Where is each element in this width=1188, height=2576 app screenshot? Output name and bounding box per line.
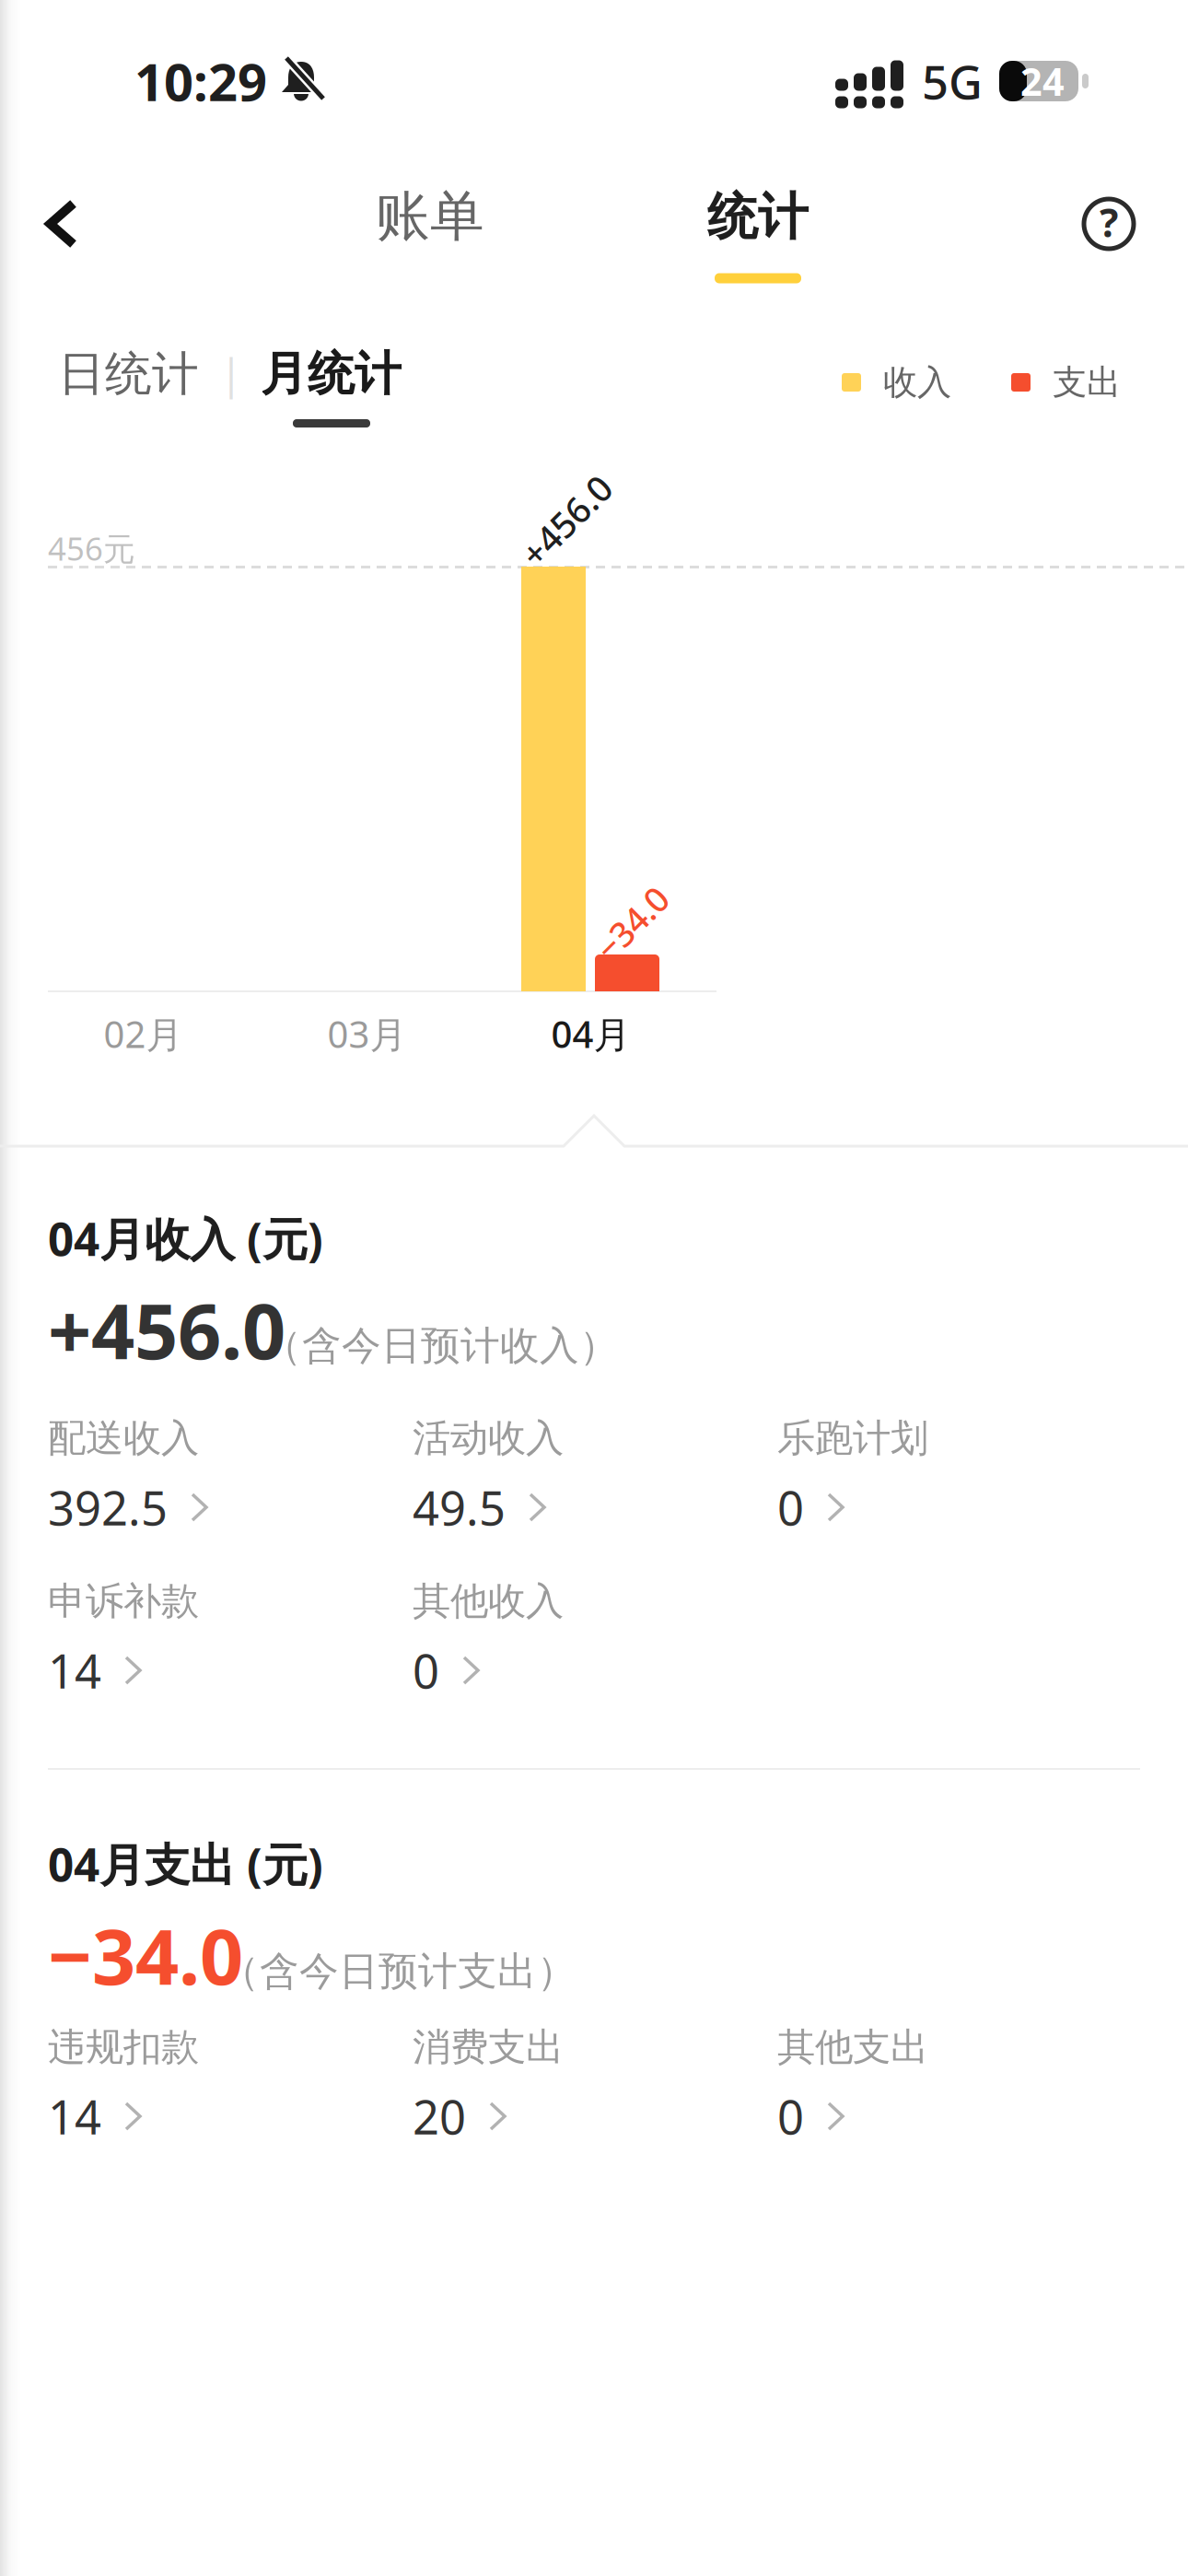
button[interactable]: 统计	[666, 181, 850, 291]
button[interactable]: 日统计	[58, 348, 205, 429]
staticText: 配送收入	[48, 1415, 199, 1462]
staticText: −34.0	[588, 900, 675, 946]
staticText: 14	[48, 1639, 101, 1701]
staticText: 02月	[104, 1009, 183, 1058]
staticText: 0	[777, 2085, 804, 2147]
staticText: 日统计	[58, 345, 199, 403]
staticText: 04月	[551, 1009, 630, 1058]
staticText: 活动收入	[413, 1415, 564, 1462]
staticText: 04月收入 (元)	[48, 1208, 323, 1268]
staticText: +456.0	[48, 1279, 285, 1380]
staticText: 申诉补款	[48, 1578, 199, 1625]
button[interactable]: 乐跑计划	[777, 1417, 1142, 1528]
staticText: 其他支出	[777, 2024, 928, 2071]
staticText: 456元	[48, 527, 135, 569]
staticText: 支出	[1053, 361, 1121, 404]
staticText: 0	[777, 1476, 804, 1538]
button[interactable]: 申诉补款	[48, 1580, 413, 1691]
staticText: （含今日预计收入）	[262, 1322, 619, 1370]
button[interactable]: 消费支出	[413, 2026, 777, 2137]
button[interactable]: 活动收入	[413, 1417, 777, 1528]
staticText: 5G	[922, 50, 983, 112]
staticText: 03月	[327, 1009, 407, 1058]
staticText: 乐跑计划	[777, 1415, 928, 1462]
staticText: 违规扣款	[48, 2024, 199, 2071]
staticText: 10:29	[134, 47, 267, 115]
staticText: 0	[413, 1639, 439, 1701]
staticText: 24	[1020, 56, 1065, 106]
staticText: 消费支出	[413, 2024, 564, 2071]
staticText: 04月支出 (元)	[48, 1834, 323, 1894]
staticText: 49.5	[413, 1476, 506, 1538]
staticText: +456.0	[511, 497, 622, 544]
staticText: 账单	[376, 183, 484, 250]
button[interactable]: 月统计	[261, 348, 408, 429]
staticText: |	[220, 345, 243, 401]
staticText: 其他收入	[413, 1578, 564, 1625]
staticText: 392.5	[48, 1476, 168, 1538]
staticText: ?	[1100, 196, 1118, 248]
button[interactable]: 违规扣款	[48, 2026, 413, 2137]
button[interactable]: 其他支出	[777, 2026, 1142, 2137]
button[interactable]: Help	[1063, 178, 1155, 270]
staticText: 14	[48, 2085, 101, 2147]
staticText: 月统计	[261, 345, 402, 403]
button[interactable]: 配送收入	[48, 1417, 413, 1528]
staticText: 统计	[707, 186, 809, 248]
staticText: 20	[413, 2085, 466, 2147]
button[interactable]: 账单	[338, 172, 522, 283]
button[interactable]: Back	[17, 178, 106, 270]
staticText: （含今日预计支出）	[220, 1947, 577, 1996]
staticText: −34.0	[48, 1905, 243, 2006]
button[interactable]: 其他收入	[413, 1580, 777, 1691]
staticText: 收入	[883, 361, 951, 404]
